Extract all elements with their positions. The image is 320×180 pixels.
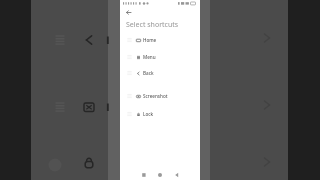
staticText: Screenshot	[143, 93, 168, 99]
button[interactable]: Lock	[120, 106, 200, 122]
staticText: Back	[143, 70, 154, 76]
staticText: Menu	[143, 54, 156, 60]
button[interactable]: Back	[120, 65, 200, 81]
staticText: Home	[143, 37, 157, 43]
staticText: Select shortcuts	[126, 20, 179, 30]
button[interactable]: Menu	[120, 49, 200, 65]
button[interactable]: Screenshot	[120, 88, 200, 104]
button[interactable]: Back	[122, 6, 134, 18]
button[interactable]: Home	[120, 32, 200, 48]
staticText: Lock	[143, 111, 154, 117]
